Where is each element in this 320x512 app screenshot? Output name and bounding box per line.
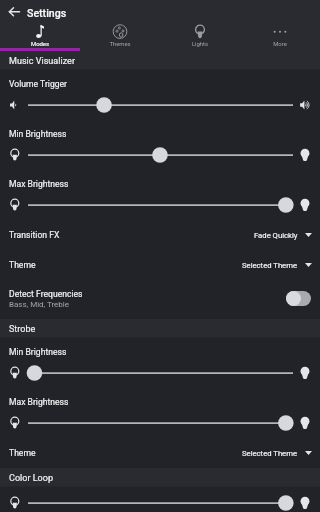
button[interactable]: Max Brightness [0,170,320,220]
staticText: Min Brightness [9,129,67,139]
staticText: Volume Trigger [9,79,67,89]
staticText: Settings [27,7,67,19]
staticText: Modes [0,41,80,48]
staticText: Theme [9,448,242,458]
staticText: Bass, Mid, Treble [9,300,70,309]
staticText: Transition FX [9,230,254,240]
button[interactable]: Themes [80,22,160,51]
button[interactable]: Min Brightness [0,120,320,170]
staticText: Max Brightness [9,179,69,189]
button[interactable]: Volume Trigger [0,70,320,120]
button[interactable]: Min Brightness [0,338,320,388]
button[interactable]: Theme [0,250,320,280]
staticText: Lights [160,41,240,48]
button[interactable]: Detect Frequencies [0,280,320,319]
button[interactable]: Modes [0,22,80,51]
button[interactable]: Navigate up [3,0,26,22]
staticText: Min Brightness [9,347,67,357]
staticText: Music Visualizer [9,56,75,67]
staticText: Color Loop [9,473,53,484]
button[interactable]: Max Brightness [0,388,320,438]
button[interactable]: More [240,22,320,51]
staticText: Max Brightness [9,397,69,407]
staticText: Selected Theme [242,449,298,458]
staticText: Selected Theme [242,261,298,270]
button[interactable] [0,487,320,512]
staticText: Strobe [9,324,36,335]
staticText: More [240,41,320,48]
button[interactable]: Theme [0,438,320,468]
staticText: Themes [80,41,160,48]
staticText: Fade Quickly [254,231,298,240]
button[interactable]: Transition FX [0,220,320,250]
button[interactable]: Lights [160,22,240,51]
staticText: Theme [9,260,242,270]
staticText: Detect Frequencies [9,289,83,299]
